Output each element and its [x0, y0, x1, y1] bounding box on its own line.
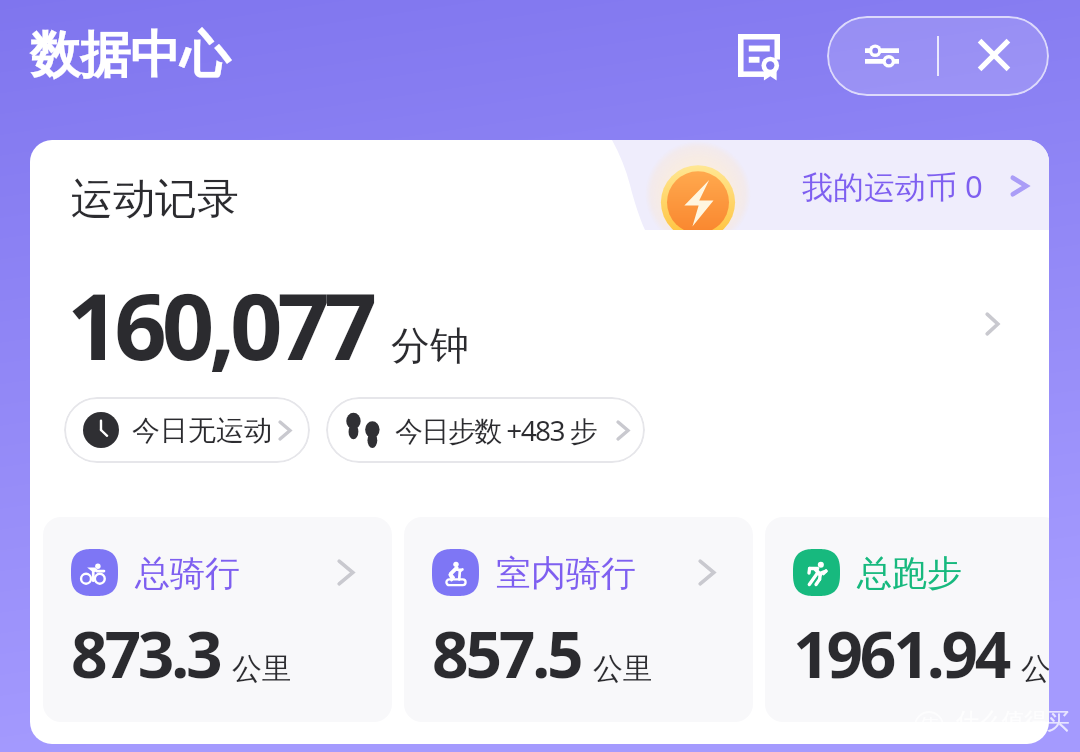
button[interactable]: Settings [827, 16, 938, 96]
staticText: 160,077 [67, 262, 372, 387]
button[interactable]: Certificate [723, 21, 795, 93]
button[interactable]: 总骑行 [43, 517, 392, 722]
button[interactable]: More [962, 294, 1022, 354]
staticText: 运动记录 [71, 173, 239, 226]
button[interactable]: 总跑步 [765, 517, 1049, 722]
staticText: 我的运动币 0 [802, 165, 983, 207]
staticText: 今日无运动 [132, 413, 272, 448]
button[interactable]: 今日步数 +483 步 [326, 397, 645, 463]
staticText: 总跑步 [857, 551, 962, 595]
staticText: 873.3 [71, 610, 220, 697]
staticText: 今日步数 +483 步 [395, 411, 597, 449]
staticText: 1961.94 [793, 610, 1009, 697]
staticText: 室内骑行 [496, 551, 636, 595]
staticText: 857.5 [432, 610, 581, 697]
staticText: 什么值得买 [956, 707, 1070, 736]
button[interactable]: Close [938, 16, 1049, 96]
button[interactable]: 今日无运动 [64, 397, 310, 463]
button[interactable]: 我的运动币 0 [600, 140, 1049, 230]
staticText: 公里 [232, 650, 292, 688]
staticText: 分钟 [391, 321, 469, 370]
staticText: 公里 [1021, 650, 1049, 688]
staticText: 总骑行 [135, 551, 240, 595]
staticText: 公里 [593, 650, 653, 688]
button[interactable]: 室内骑行 [404, 517, 753, 722]
staticText: 数据中心 [30, 24, 230, 87]
